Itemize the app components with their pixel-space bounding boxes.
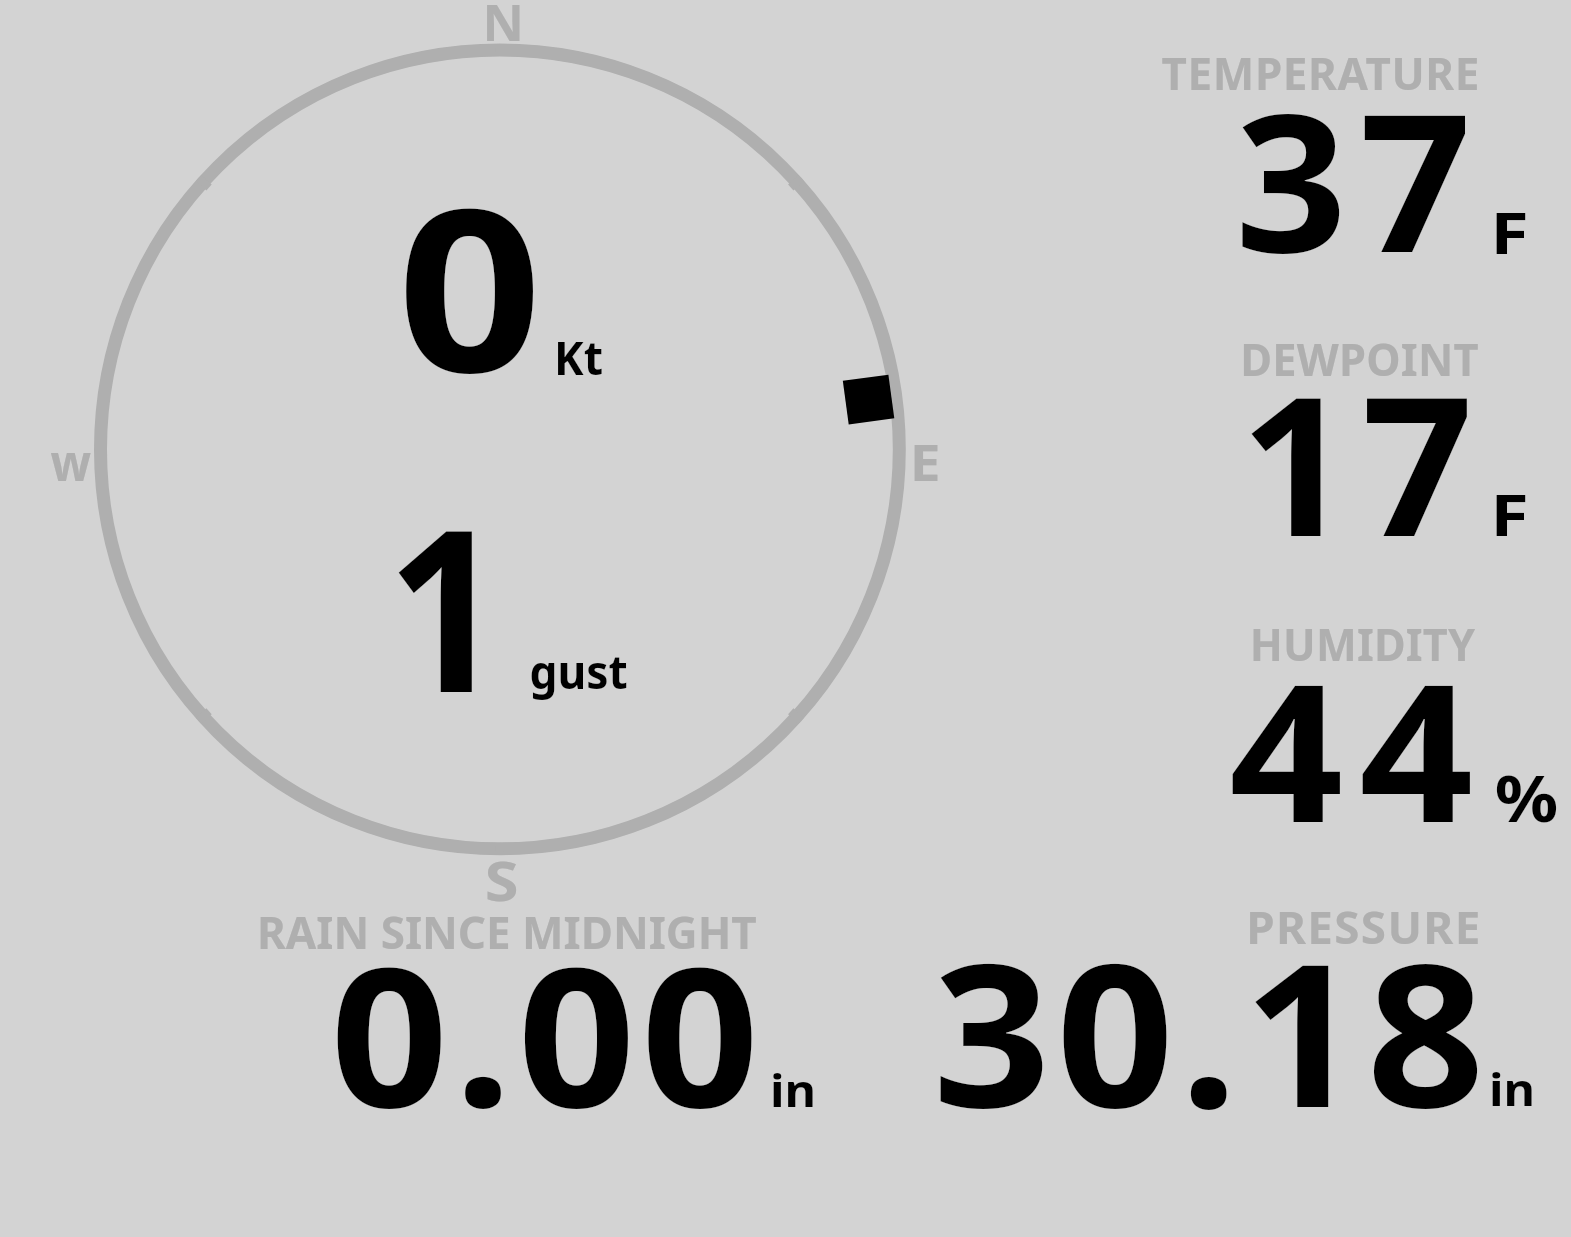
button[interactable]: Pressure 30.18 inches (880, 890, 1571, 1140)
button[interactable]: Temperature 37 degrees Fahrenheit (1090, 30, 1571, 300)
button[interactable]: Dewpoint 17 degrees Fahrenheit (1090, 310, 1571, 580)
button[interactable]: Wind: 0 knots, gusting 1 knot, from the … (60, 8, 940, 888)
button[interactable]: Humidity 44 percent (1090, 600, 1571, 850)
button[interactable]: Rain since midnight 0.00 inches (200, 890, 840, 1140)
